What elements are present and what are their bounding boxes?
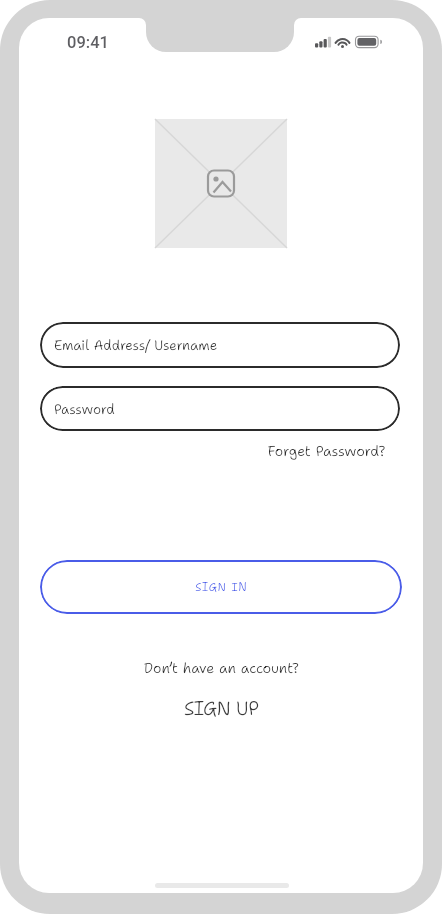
staticText: Password: [54, 400, 115, 418]
staticText: SIGN IN: [195, 580, 248, 595]
staticText: 09:41: [67, 33, 109, 52]
button[interactable]: Email Address/ Username: [40, 322, 400, 368]
button[interactable]: Forget Password?: [250, 442, 385, 461]
button[interactable]: SIGN UP: [150, 696, 292, 721]
button[interactable]: Password: [40, 386, 400, 431]
staticText: Email Address/ Username: [54, 336, 218, 354]
staticText: SIGN UP: [184, 696, 259, 721]
button[interactable]: SIGN IN: [40, 560, 402, 614]
staticText: Forget Password?: [267, 442, 385, 461]
staticText: Don’t have an account?: [144, 659, 299, 678]
